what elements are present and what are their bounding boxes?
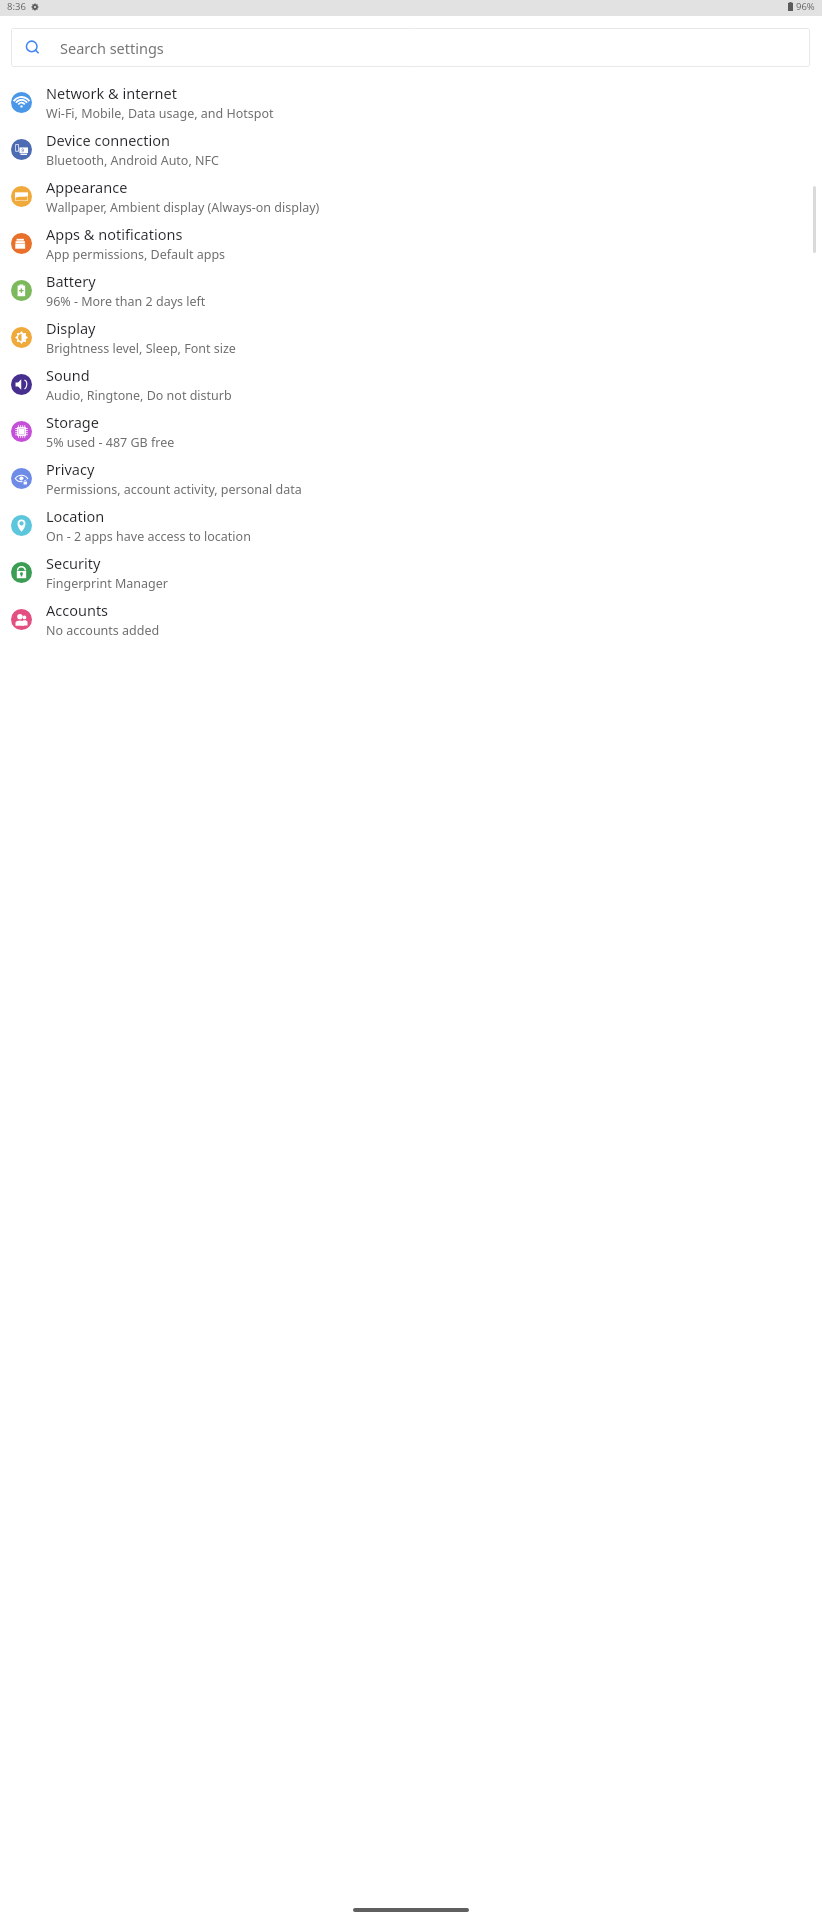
staticText: Audio, Ringtone, Do not disturb	[46, 387, 232, 404]
staticText: 5% used - 487 GB free	[46, 434, 175, 451]
button[interactable]: Device connection	[0, 126, 822, 173]
staticText: Network & internet	[46, 83, 177, 103]
staticText: Privacy	[46, 459, 95, 479]
staticText: Bluetooth, Android Auto, NFC	[46, 152, 219, 169]
staticText: Accounts	[46, 600, 109, 620]
button[interactable]: Battery	[0, 267, 822, 314]
button[interactable]: Storage	[0, 408, 822, 455]
button[interactable]: Appearance	[0, 173, 822, 220]
staticText: On - 2 apps have access to location	[46, 528, 251, 545]
button[interactable]: Apps & notifications	[0, 220, 822, 267]
staticText: Wallpaper, Ambient display (Always-on di…	[46, 199, 320, 216]
staticText: 96%	[796, 0, 815, 13]
staticText: Battery	[46, 271, 96, 291]
staticText: 96% - More than 2 days left	[46, 293, 206, 310]
staticText: Appearance	[46, 177, 128, 197]
button[interactable]: Location	[0, 502, 822, 549]
staticText: Permissions, account activity, personal …	[46, 481, 302, 498]
staticText: Display	[46, 318, 96, 338]
staticText: Storage	[46, 412, 99, 432]
button[interactable]: Accounts	[0, 596, 822, 643]
staticText: Sound	[46, 365, 90, 385]
button[interactable]: Search	[11, 28, 810, 67]
staticText: Search settings	[60, 38, 164, 58]
staticText: Apps & notifications	[46, 224, 183, 244]
staticText: Device connection	[46, 130, 170, 150]
button[interactable]: Sound	[0, 361, 822, 408]
staticText: No accounts added	[46, 622, 160, 639]
staticText: Brightness level, Sleep, Font size	[46, 340, 236, 357]
staticText: Security	[46, 553, 101, 573]
staticText: Fingerprint Manager	[46, 575, 168, 592]
button[interactable]: Security	[0, 549, 822, 596]
button[interactable]: Display	[0, 314, 822, 361]
staticText: App permissions, Default apps	[46, 246, 226, 263]
staticText: Location	[46, 506, 105, 526]
button[interactable]: Privacy	[0, 455, 822, 502]
other: Search	[25, 40, 41, 56]
button[interactable]: Network & internet	[0, 79, 822, 126]
staticText: 8:36	[7, 0, 26, 13]
staticText: Wi-Fi, Mobile, Data usage, and Hotspot	[46, 105, 274, 122]
